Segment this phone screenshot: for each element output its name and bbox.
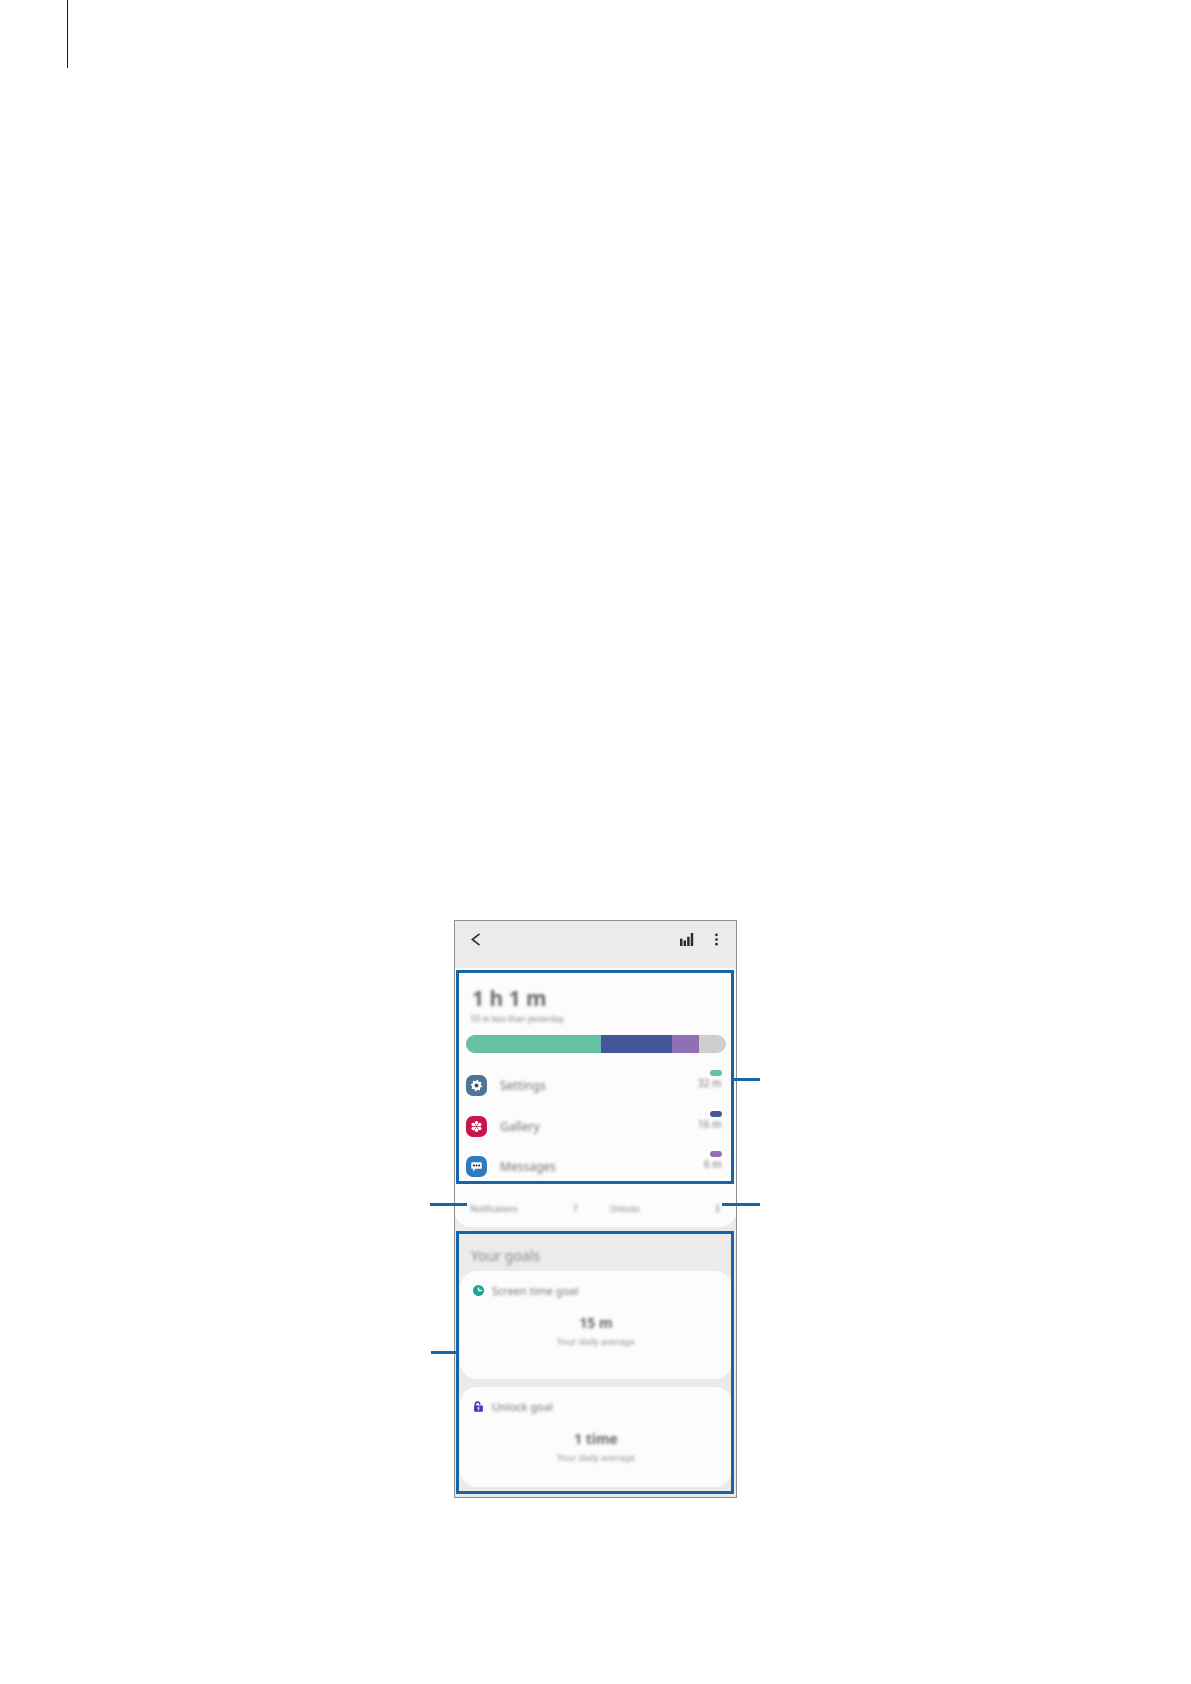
button[interactable]: Messages bbox=[454, 1149, 737, 1183]
button[interactable]: Unlock goal bbox=[460, 1387, 732, 1487]
staticText: 32 m bbox=[698, 1076, 722, 1090]
staticText: 1 h 1 m bbox=[472, 984, 547, 1013]
button[interactable]: Gallery bbox=[454, 1109, 737, 1143]
button[interactable]: Screen time goal bbox=[460, 1271, 732, 1379]
staticText: Your daily average bbox=[460, 1335, 732, 1347]
button[interactable]: Usage statistics bbox=[671, 924, 701, 954]
staticText: Messages bbox=[500, 1158, 556, 1174]
staticText: Screen time goal bbox=[492, 1283, 579, 1298]
staticText: 1 time bbox=[460, 1429, 732, 1448]
button[interactable]: More options bbox=[701, 924, 731, 954]
staticText: Gallery bbox=[500, 1118, 540, 1134]
staticText: 15 m bbox=[460, 1313, 732, 1332]
staticText: Your goals bbox=[471, 1246, 541, 1265]
staticText: 16 m bbox=[698, 1117, 722, 1131]
staticText: Notifications bbox=[470, 1203, 518, 1214]
staticText: 6 m bbox=[704, 1157, 722, 1171]
button[interactable]: Back bbox=[459, 923, 491, 955]
button[interactable]: Notifications bbox=[454, 1195, 737, 1220]
staticText: Unlock goal bbox=[492, 1399, 553, 1414]
staticText: 59 m less than yesterday bbox=[471, 1013, 564, 1024]
staticText: 7 bbox=[573, 1203, 578, 1214]
button[interactable]: Settings bbox=[454, 1068, 737, 1102]
staticText: Your daily average bbox=[460, 1451, 732, 1463]
staticText: Settings bbox=[500, 1077, 546, 1093]
staticText: 3 bbox=[715, 1203, 720, 1214]
staticText: Unlocks bbox=[610, 1203, 640, 1214]
